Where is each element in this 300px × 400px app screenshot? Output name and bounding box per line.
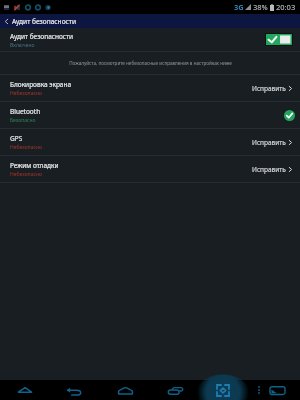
other: Secure	[284, 110, 295, 121]
button[interactable]: Up	[15, 380, 35, 400]
staticText: Режим отладки	[10, 161, 59, 170]
staticText: Исправить	[252, 165, 286, 174]
button[interactable]: Аудит безопасности	[0, 28, 300, 51]
staticText: Пожалуйста, посмотрите небезопасные испр…	[69, 60, 232, 66]
button[interactable]: Блокировка экрана	[0, 75, 300, 101]
button[interactable]: More options	[249, 380, 269, 400]
staticText: Аудит безопасности	[10, 32, 74, 41]
button[interactable]: Recents	[165, 380, 185, 400]
button[interactable]: Multi window	[267, 380, 287, 400]
button[interactable]: Home	[115, 380, 135, 400]
staticText: Небезопасно	[10, 144, 42, 151]
staticText: 38%	[253, 2, 268, 12]
staticText: 20:03	[276, 2, 296, 12]
staticText: Аудит безопасности	[12, 17, 76, 26]
button[interactable]: Screen capture	[213, 380, 233, 400]
staticText: Исправить	[252, 138, 286, 147]
button[interactable]: Bluetooth	[0, 102, 300, 128]
button[interactable]: Back	[0, 14, 300, 28]
staticText: Безопасно	[10, 117, 36, 124]
staticText: 3G	[234, 2, 244, 12]
staticText: Включено	[10, 42, 35, 49]
button[interactable]: Security audit toggle	[266, 34, 292, 45]
button[interactable]: GPS	[0, 129, 300, 155]
button[interactable]: Режим отладки	[0, 156, 300, 182]
staticText: Исправить	[252, 84, 286, 93]
staticText: Блокировка экрана	[10, 80, 72, 89]
staticText: Bluetooth	[10, 107, 41, 116]
staticText: GPS	[10, 134, 23, 143]
button[interactable]: Back	[63, 380, 83, 400]
other: Back	[3, 18, 10, 25]
staticText: Небезопасно	[10, 171, 42, 178]
staticText: Небезопасно	[10, 90, 42, 97]
